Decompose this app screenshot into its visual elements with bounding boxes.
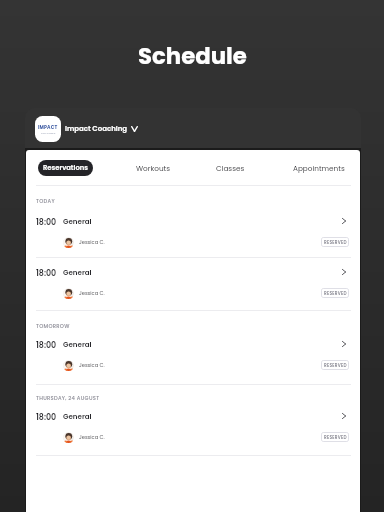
staticText: Reservations — [43, 163, 88, 173]
button[interactable]: 18:00 — [26, 215, 360, 260]
staticText: RESERVED — [324, 290, 347, 296]
button[interactable]: 18:00 — [26, 410, 360, 455]
staticText: IMPACT — [38, 124, 58, 131]
button[interactable]: 18:00 — [26, 266, 360, 311]
button[interactable]: Open reservation details — [337, 265, 351, 279]
staticText: 18:00 — [36, 217, 57, 228]
staticText: General — [63, 217, 92, 227]
staticText: General — [63, 268, 92, 278]
staticText: THURSDAY, 24 AUGUST — [36, 395, 100, 402]
staticText: RESERVED — [324, 434, 347, 440]
staticText: Jessica C. — [79, 362, 105, 369]
staticText: Workouts — [136, 163, 171, 173]
staticText: TOMORROW — [36, 323, 70, 330]
button[interactable]: Appointments — [286, 160, 352, 176]
staticText: COACHING — [41, 131, 56, 134]
staticText: 18:00 — [36, 268, 57, 279]
button[interactable]: Workouts — [120, 160, 186, 176]
staticText: General — [63, 412, 92, 422]
button[interactable]: Open reservation details — [337, 214, 351, 228]
staticText: General — [63, 340, 92, 350]
button[interactable]: Open reservation details — [337, 337, 351, 351]
staticText: Impact Coaching — [65, 124, 128, 134]
staticText: 18:00 — [36, 412, 57, 423]
staticText: Schedule — [138, 40, 247, 72]
staticText: RESERVED — [324, 239, 347, 245]
button[interactable]: Impact Coaching, switch studio — [35, 116, 138, 142]
staticText: Jessica C. — [79, 290, 105, 297]
staticText: 18:00 — [36, 340, 57, 351]
staticText: Appointments — [293, 163, 345, 173]
button[interactable]: Classes — [197, 160, 263, 176]
staticText: Jessica C. — [79, 434, 105, 441]
staticText: Classes — [216, 163, 245, 173]
staticText: RESERVED — [324, 362, 347, 368]
staticText: TODAY — [36, 198, 55, 205]
staticText: Jessica C. — [79, 239, 105, 246]
button[interactable]: Reservations — [38, 160, 93, 176]
button[interactable]: Open reservation details — [337, 409, 351, 423]
button[interactable]: 18:00 — [26, 338, 360, 383]
